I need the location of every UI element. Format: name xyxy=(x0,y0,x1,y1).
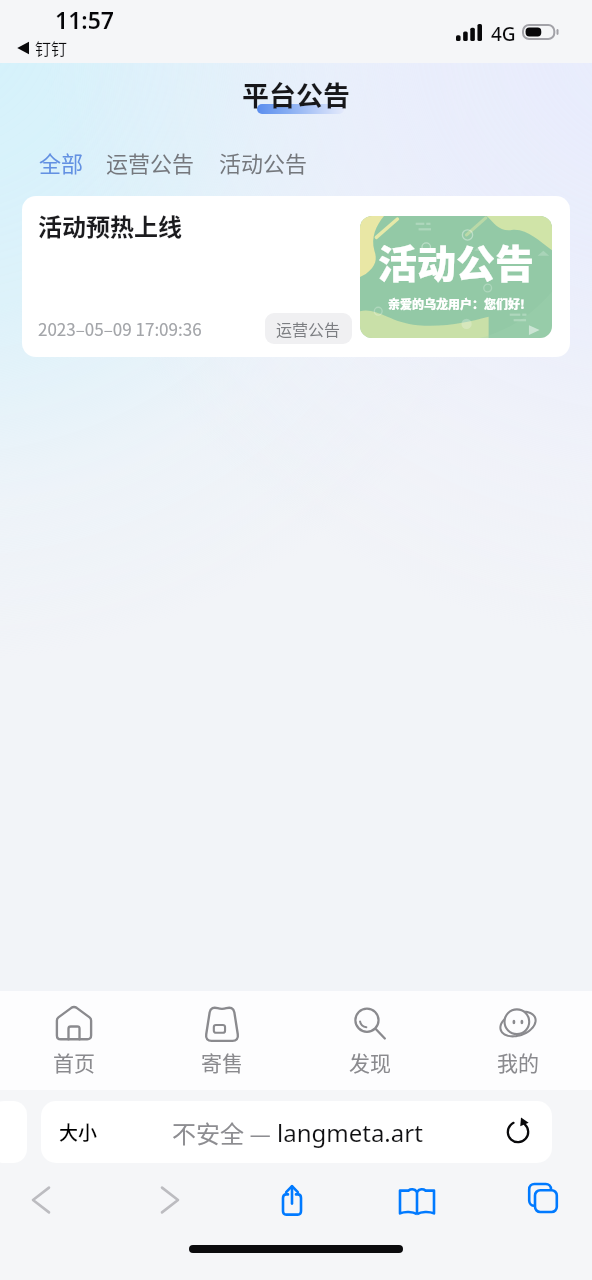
staticText: 全部 xyxy=(39,146,84,178)
button[interactable]: Reload xyxy=(498,1112,538,1152)
staticText: 我的 xyxy=(497,1047,539,1077)
button[interactable]: 全部 xyxy=(39,146,84,178)
button[interactable]: Forward xyxy=(150,1180,190,1220)
staticText: 发现 xyxy=(349,1047,391,1077)
staticText: 活动公告 xyxy=(378,233,535,289)
staticText: 寄售 xyxy=(201,1047,243,1077)
staticText: 大小 xyxy=(59,1118,98,1146)
staticText: 不安全 — xyxy=(172,1115,277,1150)
staticText: 运营公告 xyxy=(276,317,341,340)
button[interactable]: Share xyxy=(272,1180,312,1220)
staticText: 11:57 xyxy=(55,4,114,35)
button[interactable]: 运营公告 xyxy=(106,146,195,178)
button[interactable]: 活动预热上线 xyxy=(22,196,570,357)
staticText: 活动公告 xyxy=(219,146,308,178)
staticText: 亲爱的乌龙用户：您们好! xyxy=(388,295,525,312)
button[interactable]: Back to DingTalk xyxy=(17,36,68,59)
button[interactable]: Tabs xyxy=(523,1180,563,1220)
staticText: 运营公告 xyxy=(106,146,195,178)
staticText: 首页 xyxy=(53,1047,95,1077)
button[interactable]: 首页 xyxy=(0,991,148,1090)
button[interactable]: 寄售 xyxy=(148,991,296,1090)
button[interactable]: Back xyxy=(21,1180,61,1220)
button[interactable]: Bookmarks xyxy=(397,1180,437,1220)
button[interactable]: 大小 xyxy=(41,1101,552,1163)
staticText: 活动预热上线 xyxy=(38,208,182,243)
staticText: 4G xyxy=(491,21,516,47)
button[interactable]: 活动公告 xyxy=(219,146,308,178)
staticText: langmeta.art xyxy=(277,1116,423,1149)
staticText: 平台公告 xyxy=(242,75,350,109)
staticText: 钉钉 xyxy=(35,36,68,59)
button[interactable]: 发现 xyxy=(296,991,444,1090)
staticText: 2023–05–09 17:09:36 xyxy=(38,316,202,341)
button[interactable]: 我的 xyxy=(444,991,592,1090)
